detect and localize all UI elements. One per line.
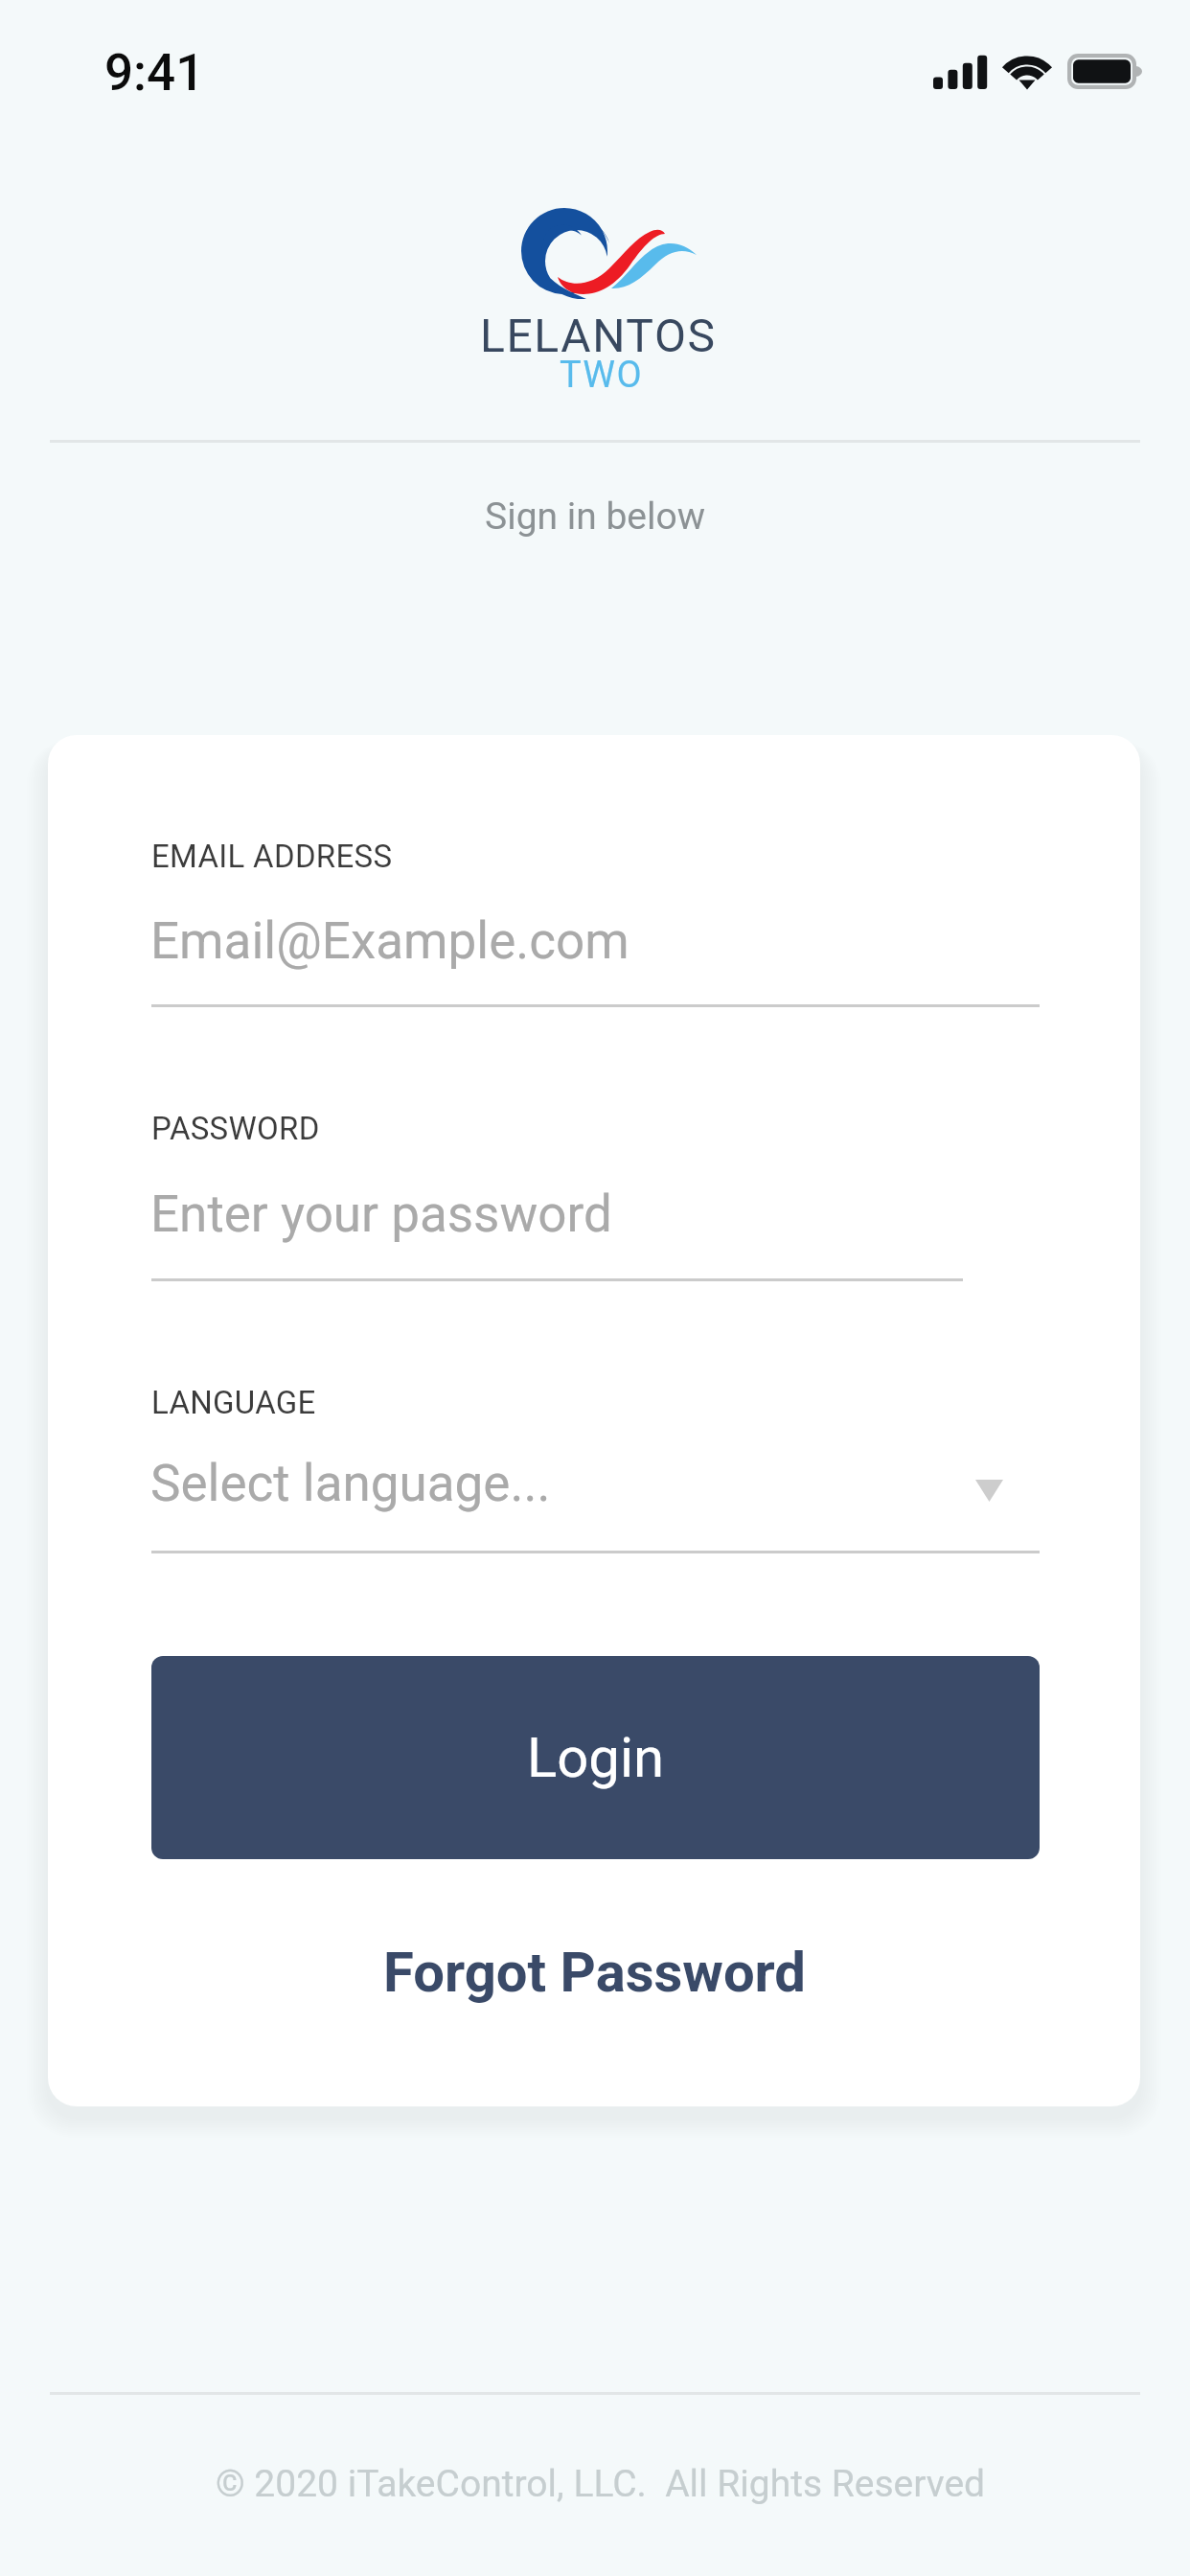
staticText: Login	[527, 1725, 665, 1790]
staticText: Forgot Password	[383, 1940, 806, 2005]
button[interactable]: Forgot Password	[48, 1920, 1140, 2024]
staticText: Sign in below	[485, 494, 706, 539]
staticText: LELANTOS	[480, 309, 717, 362]
staticText: LANGUAGE	[151, 1384, 316, 1421]
staticText: Select language...	[150, 1454, 551, 1513]
staticText: Email@Example.com	[150, 911, 629, 971]
staticText: TWO	[560, 354, 644, 397]
staticText: 9:41	[104, 43, 205, 103]
staticText: © 2020 iTakeControl, LLC. All Rights Res…	[216, 2462, 986, 2506]
staticText: EMAIL ADDRESS	[151, 838, 393, 875]
button[interactable]: Login	[151, 1656, 1040, 1859]
button[interactable]: Select language	[975, 1480, 1003, 1502]
staticText: PASSWORD	[151, 1110, 320, 1147]
staticText: Enter your password	[150, 1184, 612, 1244]
